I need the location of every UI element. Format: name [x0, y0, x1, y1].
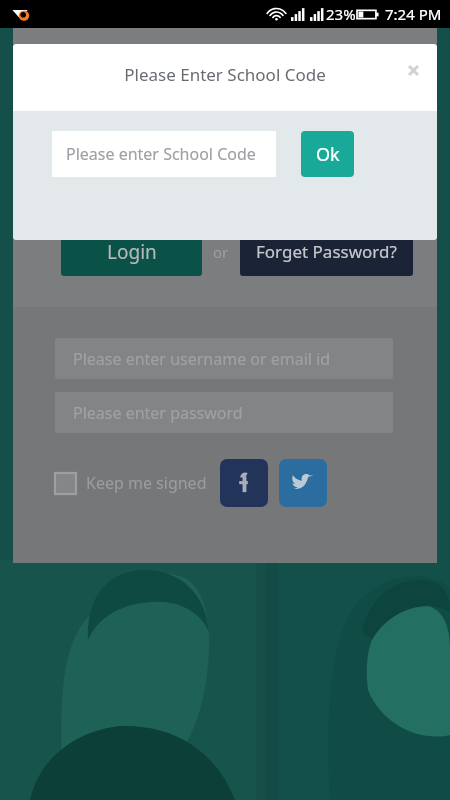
button[interactable]: Please enter username or email id [55, 338, 393, 379]
staticText: Ok [316, 142, 340, 167]
button[interactable]: Twitter [279, 459, 327, 507]
staticText: Login [107, 239, 157, 265]
staticText: Please enter School Code [66, 143, 256, 165]
staticText: Forget Password? [256, 240, 397, 263]
staticText: or [213, 242, 229, 262]
staticText: Please Enter School Code [124, 63, 326, 86]
button[interactable]: Facebook [220, 459, 268, 507]
button[interactable]: Ok [301, 131, 354, 177]
staticText: Please enter password [73, 402, 243, 424]
staticText: Please enter username or email id [73, 348, 331, 370]
button[interactable]: Close [397, 54, 429, 86]
button[interactable]: Keep me signed [55, 472, 207, 494]
staticText: 23% [326, 4, 356, 24]
button[interactable]: Login [61, 227, 202, 276]
staticText: Keep me signed [86, 472, 207, 494]
button[interactable]: Forget Password? [240, 227, 413, 276]
staticText: 7:24 PM [385, 4, 442, 24]
button[interactable]: Please enter School Code [52, 131, 276, 177]
button[interactable]: Please enter password [55, 392, 393, 433]
